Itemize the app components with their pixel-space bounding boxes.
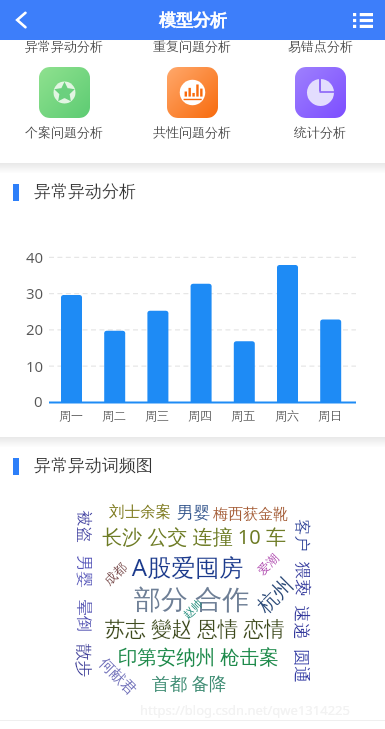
staticText: 重复问题分析: [153, 38, 231, 54]
staticText: 易错点分析: [288, 38, 353, 54]
staticText: 异常异动词频图: [34, 455, 153, 476]
button[interactable]: 个案问题分析: [0, 67, 128, 140]
staticText: 共性问题分析: [153, 124, 231, 140]
staticText: 20: [26, 319, 44, 339]
button[interactable]: Menu: [341, 0, 385, 40]
staticText: 个案问题分析: [25, 124, 103, 140]
staticText: 周五: [231, 408, 255, 423]
staticText: 0: [34, 391, 43, 411]
staticText: 周一: [59, 408, 83, 423]
staticText: 周二: [102, 408, 126, 423]
staticText: 异常异动分析: [25, 38, 103, 54]
staticText: 异常异动分析: [34, 181, 136, 202]
staticText: 周日: [318, 408, 342, 423]
staticText: 模型分析: [159, 10, 227, 31]
button[interactable]: 统计分析: [256, 67, 384, 140]
staticText: 周六: [275, 408, 299, 423]
button[interactable]: Back: [0, 0, 42, 40]
staticText: 周三: [145, 408, 169, 423]
staticText: 周四: [188, 408, 212, 423]
button[interactable]: 共性问题分析: [128, 67, 256, 140]
staticText: 统计分析: [294, 124, 346, 140]
staticText: 30: [26, 283, 44, 303]
staticText: 40: [26, 247, 44, 267]
staticText: 10: [26, 356, 44, 376]
